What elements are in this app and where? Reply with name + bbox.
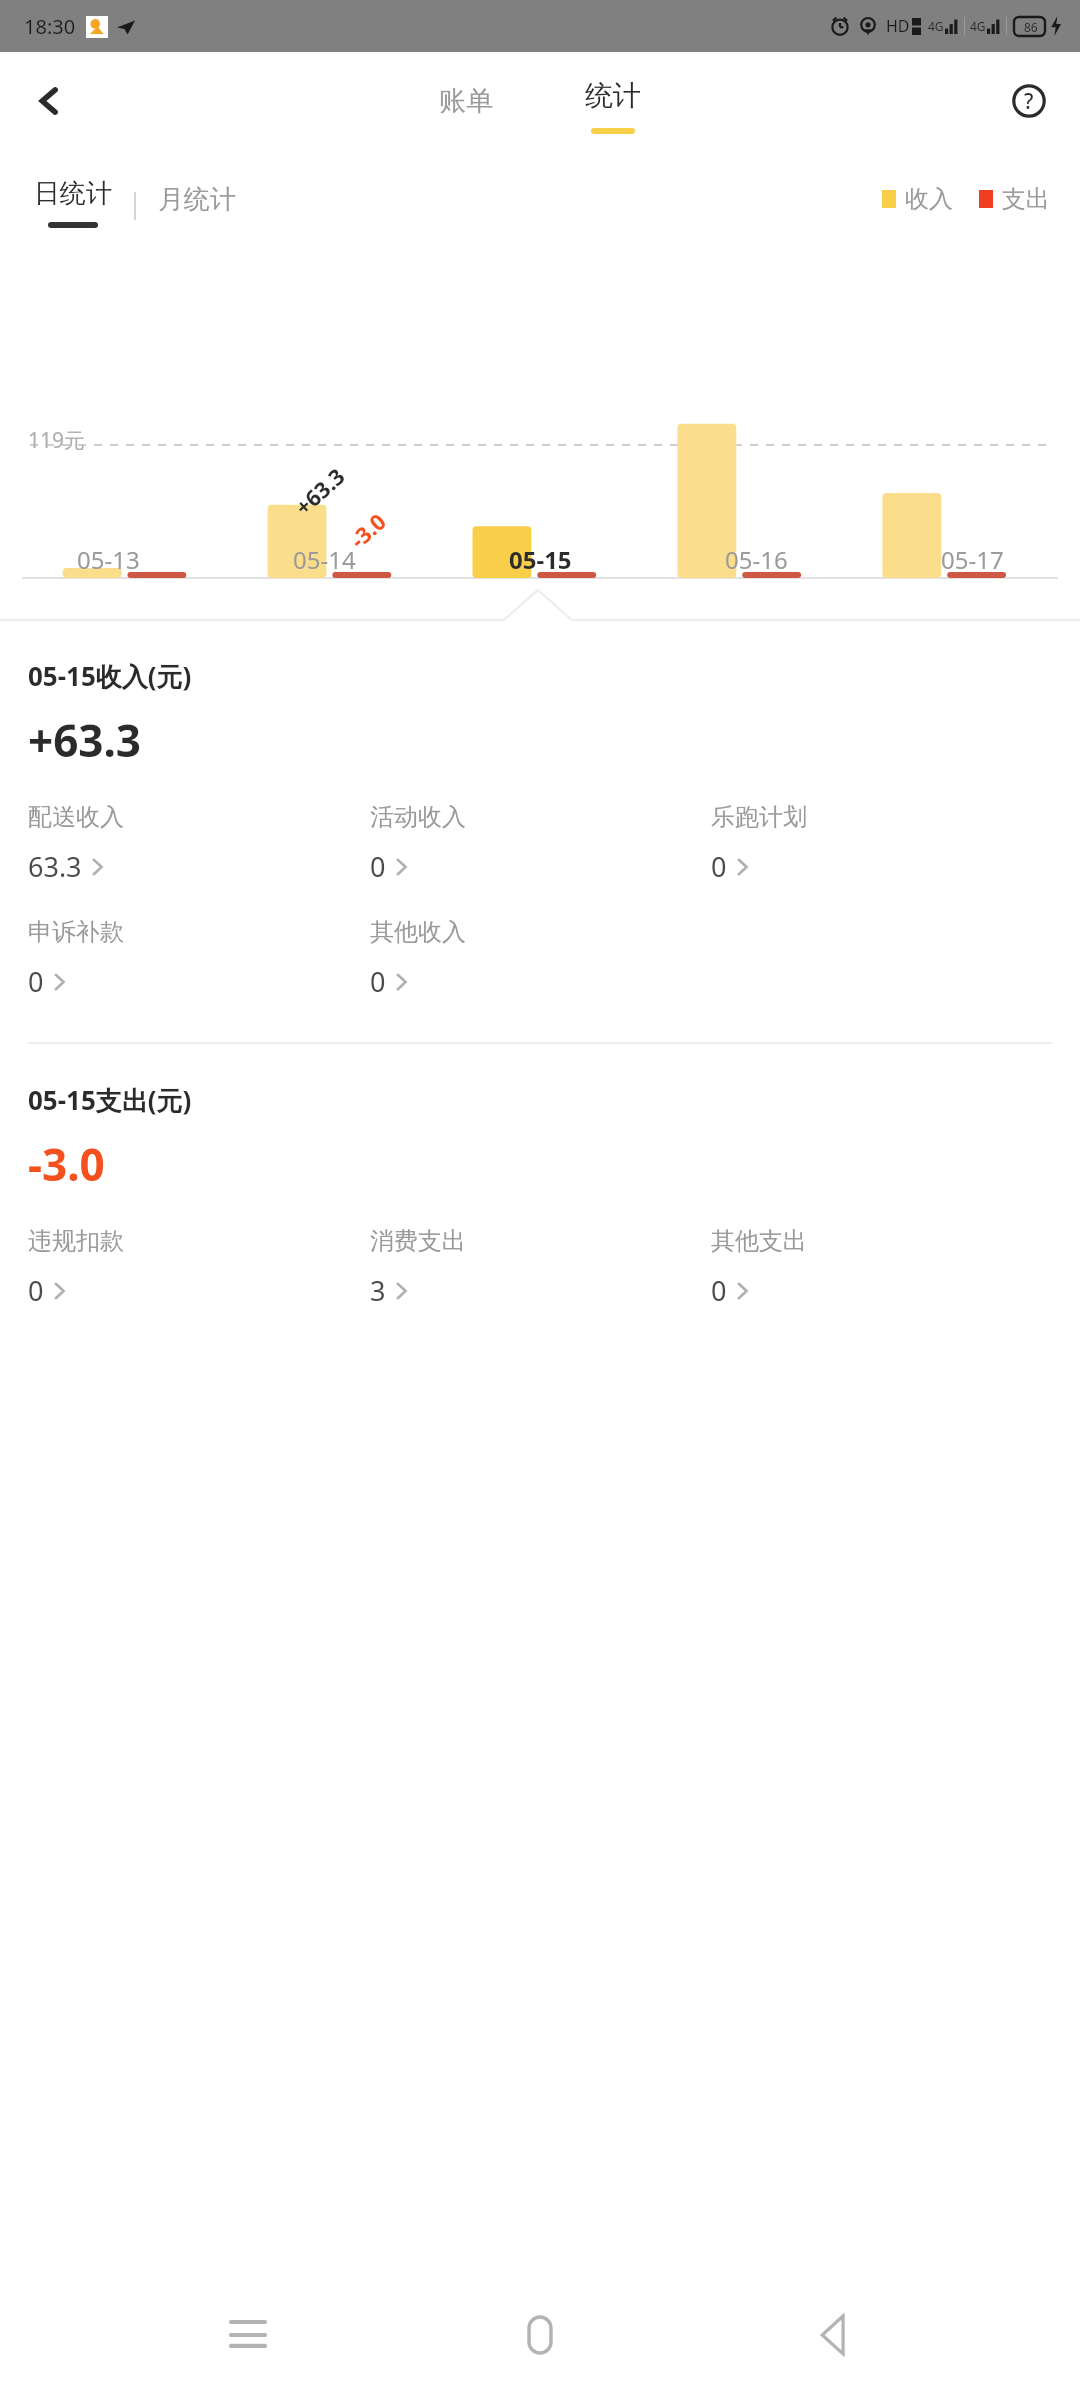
button[interactable]: Help [1000, 72, 1058, 130]
staticText: 05-14 [293, 543, 356, 576]
staticText: 申诉补款 [28, 917, 124, 947]
button[interactable]: 05-17 [864, 543, 1080, 576]
button[interactable]: Back [788, 2290, 878, 2380]
button[interactable]: 消费支出 [370, 1224, 476, 1311]
staticText: 违规扣款 [28, 1226, 124, 1256]
button[interactable]: 配送收入 [28, 800, 134, 887]
staticText: 月统计 [158, 183, 236, 216]
button[interactable]: 05-13 [0, 543, 216, 576]
staticText: ? [1024, 87, 1034, 116]
button[interactable]: Recents [203, 2290, 293, 2380]
staticText: 其他收入 [370, 917, 466, 947]
button[interactable]: 统计 [559, 68, 667, 134]
button[interactable]: 申诉补款 [28, 915, 134, 1002]
staticText: 配送收入 [28, 802, 124, 832]
staticText: 3 [370, 1272, 386, 1309]
staticText: -3.0 [343, 506, 392, 554]
button[interactable]: 05-16 [648, 543, 864, 576]
staticText: 账单 [439, 84, 493, 118]
staticText: 0 [28, 963, 44, 1000]
button[interactable]: 账单 [413, 74, 519, 128]
staticText: -3.0 [28, 1134, 105, 1194]
staticText: 支出 [1002, 184, 1050, 214]
staticText: 日统计 [34, 177, 112, 210]
staticText: +63.3 [28, 710, 142, 770]
staticText: 05-15支出(元) [28, 1082, 192, 1118]
button[interactable]: Home [495, 2290, 585, 2380]
button[interactable]: 日统计 [28, 171, 118, 240]
staticText: 05-15 [509, 543, 572, 576]
staticText: 119元 [28, 426, 86, 455]
staticText: +63.3 [288, 461, 351, 521]
staticText: 收入 [905, 184, 953, 214]
staticText: 05-15收入(元) [28, 658, 192, 694]
staticText: HD [886, 15, 910, 37]
staticText: 4G [928, 18, 944, 34]
staticText: 统计 [585, 78, 641, 113]
staticText: 0 [711, 1272, 727, 1309]
staticText: 其他支出 [711, 1226, 807, 1256]
staticText: 乐跑计划 [711, 802, 807, 832]
staticText: 0 [28, 1272, 44, 1309]
staticText: 0 [711, 848, 727, 885]
button[interactable]: Back [18, 70, 80, 132]
staticText: 05-13 [77, 543, 140, 576]
staticText: 4G [970, 18, 986, 34]
staticText: 18:30 [24, 13, 76, 40]
button[interactable]: 05-15 [432, 543, 648, 576]
button[interactable]: 乐跑计划 [711, 800, 817, 887]
button[interactable]: 活动收入 [370, 800, 476, 887]
staticText: 消费支出 [370, 1226, 466, 1256]
button[interactable]: 月统计 [152, 183, 242, 228]
button[interactable]: 违规扣款 [28, 1224, 134, 1311]
staticText: 63.3 [28, 848, 82, 885]
staticText: 0 [370, 848, 386, 885]
staticText: 0 [370, 963, 386, 1000]
staticText: 05-16 [725, 543, 788, 576]
staticText: 活动收入 [370, 802, 466, 832]
button[interactable]: 其他收入 [370, 915, 476, 1002]
staticText: 05-17 [941, 543, 1004, 576]
staticText: 86 [1024, 19, 1038, 35]
button[interactable]: 其他支出 [711, 1224, 817, 1311]
button[interactable]: 05-14 [216, 543, 432, 576]
